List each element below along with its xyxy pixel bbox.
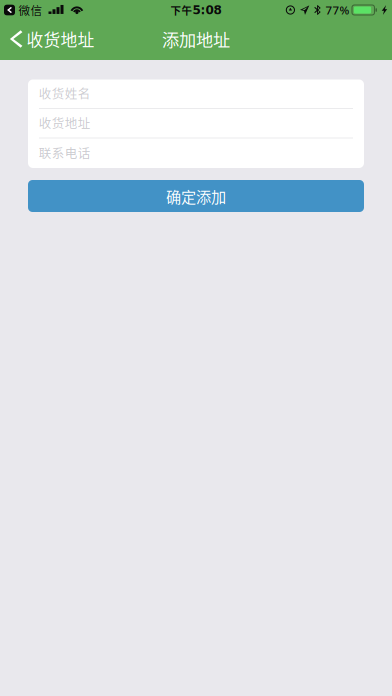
- button[interactable]: 联系电话: [28, 138, 364, 168]
- button[interactable]: 收货姓名: [28, 79, 364, 108]
- staticText: 77%: [325, 2, 349, 18]
- staticText: 收货地址: [39, 113, 91, 132]
- button[interactable]: 收货地址: [0, 20, 95, 60]
- staticText: 收货地址: [27, 27, 95, 51]
- staticText: 确定添加: [166, 185, 226, 207]
- staticText: 下午: [170, 2, 192, 18]
- staticText: 收货姓名: [39, 84, 91, 102]
- button[interactable]: Return to WeChat: [0, 2, 42, 18]
- staticText: 微信: [18, 2, 42, 18]
- staticText: 添加地址: [162, 26, 230, 51]
- staticText: 联系电话: [39, 143, 91, 162]
- button[interactable]: 收货地址: [28, 109, 364, 137]
- staticText: 5:08: [192, 3, 221, 17]
- button[interactable]: 确定添加: [28, 180, 364, 212]
